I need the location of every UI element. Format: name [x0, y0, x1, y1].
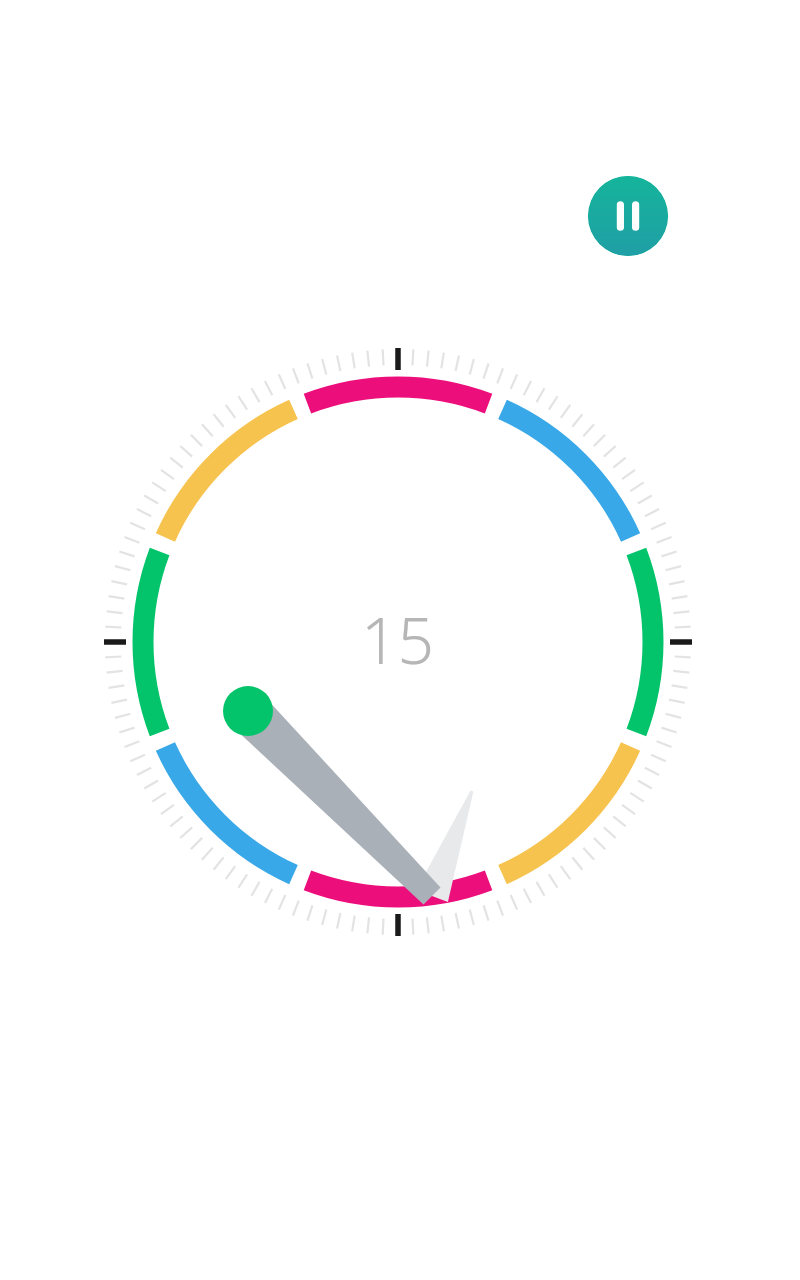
button[interactable]: Pause — [588, 176, 668, 256]
